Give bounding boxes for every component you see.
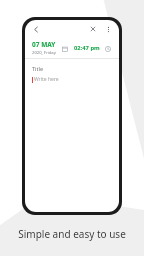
button[interactable]: Pick time: [103, 44, 112, 53]
staticText: Simple and easy to use: [18, 227, 126, 241]
button[interactable]: 07 MAY: [32, 40, 56, 56]
staticText: 02:47 pm: [74, 44, 100, 52]
button[interactable]: Back: [30, 23, 42, 35]
button[interactable]: Write here: [32, 76, 119, 83]
staticText: Title: [32, 65, 43, 72]
button[interactable]: Pick date: [60, 44, 69, 53]
staticText: Write here: [34, 76, 59, 83]
staticText: 07 MAY: [32, 40, 56, 49]
button[interactable]: Close: [87, 23, 99, 35]
staticText: 2020, Friday: [32, 50, 56, 56]
button[interactable]: More options: [102, 23, 114, 35]
